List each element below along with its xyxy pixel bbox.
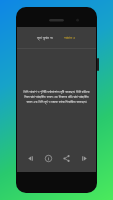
button[interactable]: Previous verse xyxy=(24,152,36,164)
staticText: সূরা যুমার নং xyxy=(37,35,54,41)
button[interactable]: Information xyxy=(42,152,54,164)
staticText: তিনি আকাশ ও পৃথিবী যথাযথভাবে সৃষ্টি করেছ… xyxy=(22,89,91,104)
staticText: আয়াত ৫ xyxy=(64,35,76,41)
button[interactable]: Share xyxy=(60,152,72,164)
button[interactable]: সূরা যুমার নং xyxy=(17,27,96,48)
button[interactable]: Next verse xyxy=(78,152,90,164)
